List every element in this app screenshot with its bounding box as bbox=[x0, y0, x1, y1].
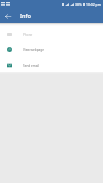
staticText: Send email bbox=[23, 64, 40, 68]
button[interactable]: Phone bbox=[0, 27, 103, 42]
button[interactable]: Send email bbox=[0, 58, 103, 73]
staticText: Info bbox=[20, 12, 31, 20]
button[interactable]: Back bbox=[3, 11, 13, 21]
staticText: View webpage bbox=[23, 48, 44, 52]
staticText: 38% bbox=[75, 2, 82, 7]
staticText: Phone bbox=[23, 33, 33, 37]
staticText: 10:02 pm bbox=[86, 2, 101, 7]
button[interactable]: View webpage bbox=[0, 42, 103, 57]
